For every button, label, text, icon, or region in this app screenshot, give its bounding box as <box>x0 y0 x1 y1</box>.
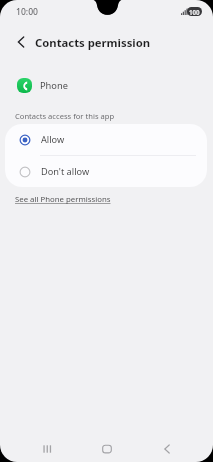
button[interactable]: Back <box>152 434 181 462</box>
staticText: Contacts access for this app <box>15 111 115 121</box>
button[interactable]: Back <box>9 30 32 53</box>
staticText: 10:00 <box>16 6 39 18</box>
button[interactable]: Allow <box>5 124 207 155</box>
button[interactable]: Don't allow <box>5 156 207 187</box>
staticText: 100 <box>189 8 200 16</box>
button[interactable]: Recents <box>32 434 61 462</box>
staticText: Allow <box>41 133 65 146</box>
staticText: Phone <box>40 79 68 92</box>
staticText: Don't allow <box>41 165 90 178</box>
button[interactable]: Home <box>92 434 121 462</box>
button[interactable]: See all Phone permissions <box>15 194 111 205</box>
staticText: See all Phone permissions <box>15 194 111 205</box>
staticText: Contacts permission <box>35 35 151 50</box>
